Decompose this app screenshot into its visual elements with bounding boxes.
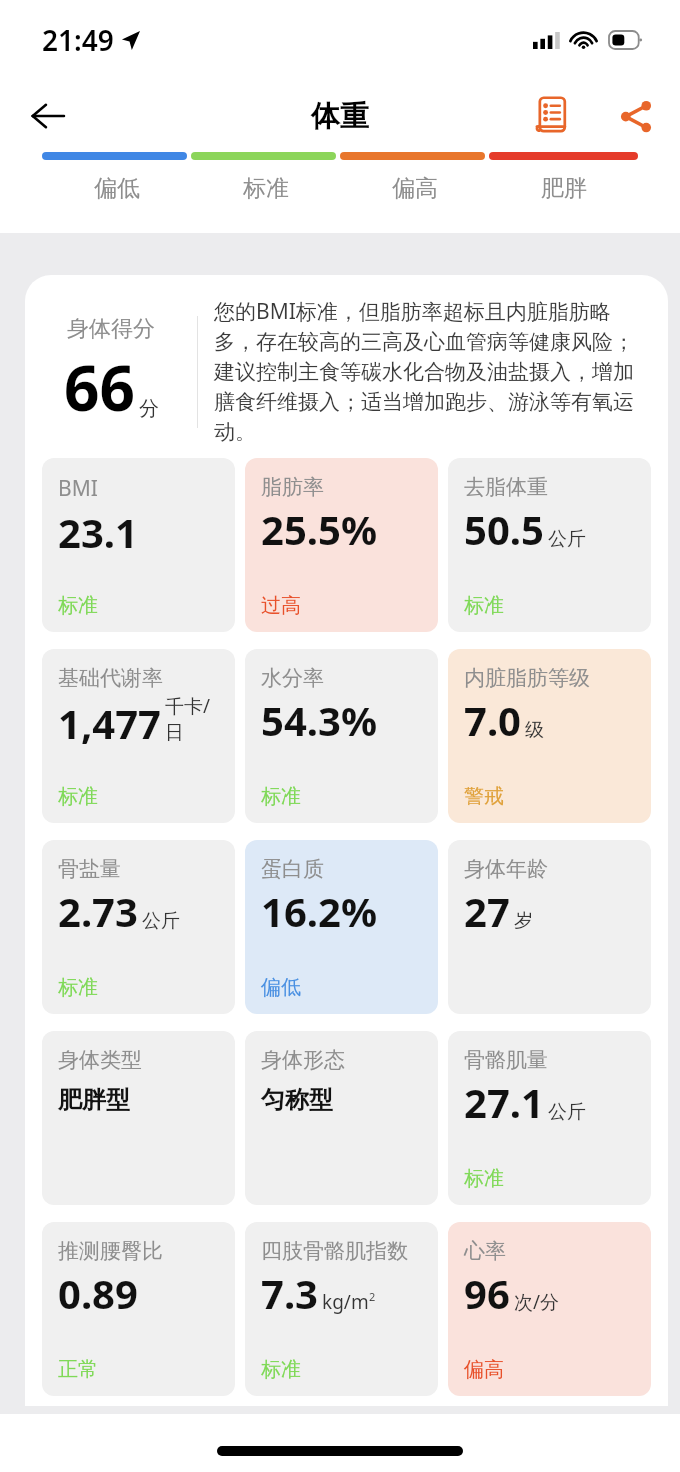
staticText: 标准 bbox=[58, 975, 98, 1000]
staticText: 您的BMI标准，但脂肪率超标且内脏脂肪略多，存在较高的三高及心血管病等健康风险；… bbox=[214, 297, 650, 446]
staticText: 7.3 bbox=[261, 1266, 318, 1320]
staticText: 偏高 bbox=[464, 1357, 504, 1382]
staticText: 身体得分 bbox=[67, 315, 155, 343]
button[interactable]: Back bbox=[20, 88, 76, 144]
button[interactable]: 四肢骨骼肌指数 bbox=[245, 1222, 438, 1396]
staticText: 身体形态 bbox=[261, 1047, 345, 1073]
staticText: 标准 bbox=[261, 1357, 301, 1382]
staticText: 正常 bbox=[58, 1357, 98, 1382]
staticText: 66 bbox=[64, 345, 135, 429]
staticText: 标准 bbox=[58, 784, 98, 809]
staticText: 标准 bbox=[58, 593, 98, 618]
button[interactable]: Share bbox=[610, 90, 662, 142]
staticText: 0.89 bbox=[58, 1266, 138, 1320]
staticText: 骨盐量 bbox=[58, 856, 121, 882]
staticText: 分 bbox=[139, 396, 159, 421]
staticText: 标准 bbox=[243, 174, 289, 203]
button[interactable]: 身体年龄 bbox=[448, 840, 651, 1014]
staticText: 7.0 bbox=[464, 693, 521, 747]
staticText: 2 bbox=[369, 1289, 376, 1304]
staticText: 21:49 bbox=[42, 21, 114, 59]
staticText: 公斤 bbox=[548, 1100, 586, 1124]
button[interactable]: 去脂体重 bbox=[448, 458, 651, 632]
staticText: 27 bbox=[464, 884, 510, 938]
staticText: 肥胖型 bbox=[58, 1085, 130, 1115]
button[interactable]: 推测腰臀比 bbox=[42, 1222, 235, 1396]
staticText: 偏高 bbox=[392, 174, 438, 203]
button[interactable]: 水分率 bbox=[245, 649, 438, 823]
staticText: 基础代谢率 bbox=[58, 665, 163, 691]
staticText: 千卡/日 bbox=[165, 693, 227, 745]
staticText: 水分率 bbox=[261, 665, 324, 691]
staticText: 1,477 bbox=[58, 696, 161, 750]
button[interactable]: 内脏脂肪等级 bbox=[448, 649, 651, 823]
staticText: kg/m bbox=[322, 1289, 369, 1315]
staticText: 23.1 bbox=[58, 505, 138, 559]
staticText: 公斤 bbox=[548, 527, 586, 551]
staticText: 偏低 bbox=[94, 174, 140, 203]
staticText: 标准 bbox=[261, 784, 301, 809]
staticText: 内脏脂肪等级 bbox=[464, 665, 590, 691]
button[interactable]: 心率 bbox=[448, 1222, 651, 1396]
staticText: 匀称型 bbox=[261, 1085, 333, 1115]
staticText: 四肢骨骼肌指数 bbox=[261, 1238, 408, 1264]
button[interactable]: 脂肪率 bbox=[245, 458, 438, 632]
button[interactable]: 身体形态 bbox=[245, 1031, 438, 1205]
button[interactable]: Report bbox=[524, 88, 580, 144]
staticText: BMI bbox=[58, 474, 98, 503]
staticText: 级 bbox=[525, 718, 544, 742]
button[interactable]: 基础代谢率 bbox=[42, 649, 235, 823]
staticText: 25.5% bbox=[261, 502, 377, 556]
staticText: 身体类型 bbox=[58, 1047, 142, 1073]
staticText: 27.1 bbox=[464, 1075, 544, 1129]
staticText: 16.2% bbox=[261, 884, 377, 938]
button[interactable]: BMI bbox=[42, 458, 235, 632]
staticText: 警戒 bbox=[464, 784, 504, 809]
staticText: 96 bbox=[464, 1266, 510, 1320]
staticText: 心率 bbox=[464, 1238, 506, 1264]
button[interactable]: 骨盐量 bbox=[42, 840, 235, 1014]
staticText: 次/分 bbox=[514, 1289, 560, 1315]
staticText: 去脂体重 bbox=[464, 474, 548, 500]
staticText: 标准 bbox=[464, 1166, 504, 1191]
button[interactable]: 蛋白质 bbox=[245, 840, 438, 1014]
staticText: 岁 bbox=[514, 909, 533, 933]
staticText: 偏低 bbox=[261, 975, 301, 1000]
button[interactable]: 骨骼肌量 bbox=[448, 1031, 651, 1205]
staticText: 50.5 bbox=[464, 502, 544, 556]
staticText: 身体年龄 bbox=[464, 856, 548, 882]
staticText: 骨骼肌量 bbox=[464, 1047, 548, 1073]
staticText: 54.3% bbox=[261, 693, 377, 747]
staticText: 推测腰臀比 bbox=[58, 1238, 163, 1264]
staticText: 蛋白质 bbox=[261, 856, 324, 882]
staticText: 体重 bbox=[311, 98, 369, 135]
staticText: 脂肪率 bbox=[261, 474, 324, 500]
button[interactable]: 身体类型 bbox=[42, 1031, 235, 1205]
staticText: 2.73 bbox=[58, 884, 138, 938]
staticText: 肥胖 bbox=[541, 174, 587, 203]
staticText: 过高 bbox=[261, 593, 301, 618]
staticText: 标准 bbox=[464, 593, 504, 618]
staticText: 公斤 bbox=[142, 909, 180, 933]
